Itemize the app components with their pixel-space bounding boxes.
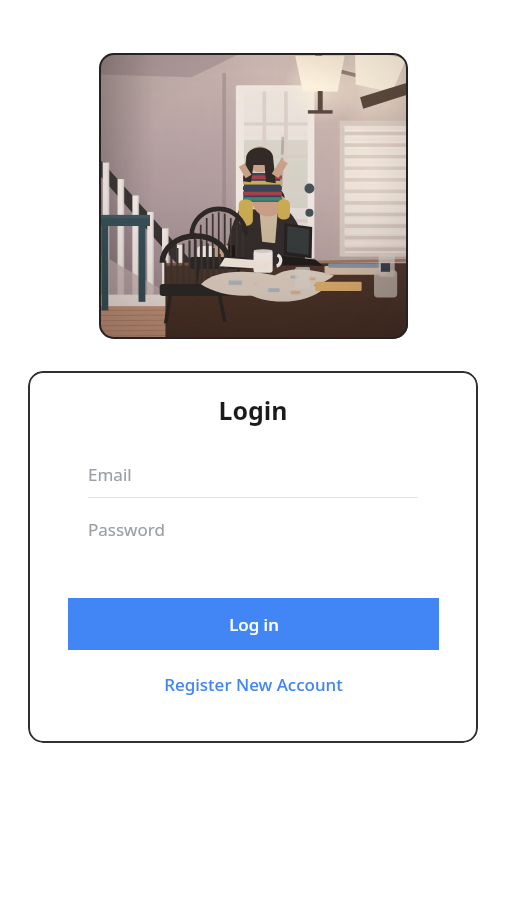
button[interactable]: Register New Account [28, 667, 478, 701]
button[interactable]: Email [88, 463, 418, 498]
staticText: Log in [229, 613, 279, 636]
button[interactable]: Password [88, 518, 418, 541]
staticText: Login [218, 393, 288, 427]
staticText: Register New Account [164, 673, 343, 696]
staticText: Password [88, 518, 165, 541]
button[interactable]: Log in [68, 598, 439, 650]
staticText: Email [88, 463, 132, 486]
